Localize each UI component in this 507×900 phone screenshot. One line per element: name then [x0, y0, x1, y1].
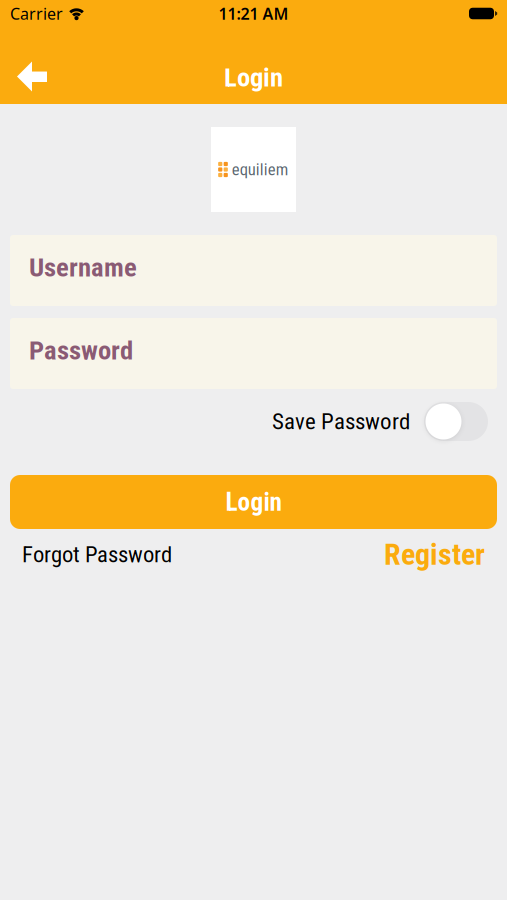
staticText: equiliem [232, 160, 289, 179]
button[interactable]: Forgot Password [22, 541, 172, 568]
staticText: Save Password [272, 408, 410, 435]
staticText: Carrier [10, 3, 63, 24]
staticText: Register [384, 537, 485, 572]
button[interactable]: Back [0, 26, 61, 104]
staticText: Password [29, 335, 133, 366]
staticText: Login [224, 62, 283, 93]
button[interactable]: Register [384, 537, 485, 572]
button[interactable]: Login [10, 475, 497, 529]
staticText: Login [225, 487, 281, 517]
staticText: 11:21 AM [218, 3, 288, 24]
staticText: Forgot Password [22, 541, 172, 568]
button[interactable]: Save Password [424, 402, 488, 441]
staticText: Username [29, 252, 137, 283]
